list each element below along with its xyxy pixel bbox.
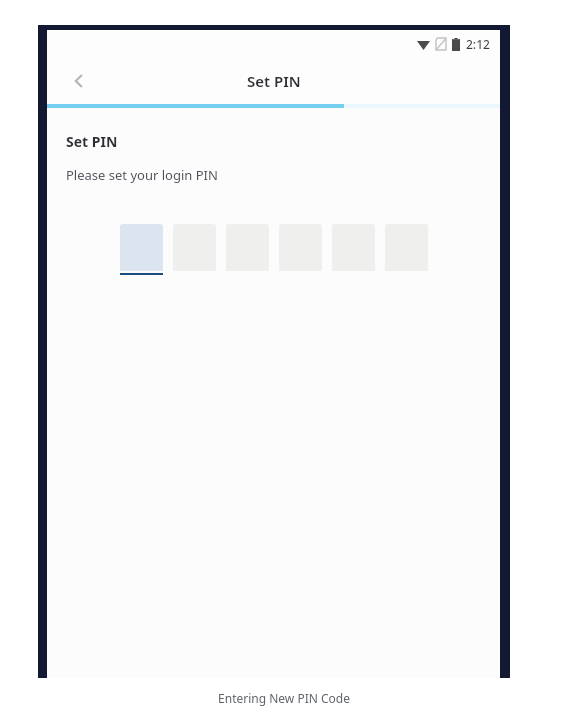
staticText: Set PIN: [66, 132, 118, 151]
staticText: 2:12: [466, 36, 490, 52]
staticText: Please set your login PIN: [66, 166, 218, 184]
staticText: Set PIN: [247, 71, 301, 91]
staticText: Entering New PIN Code: [218, 690, 350, 706]
button[interactable]: Back: [59, 61, 99, 101]
